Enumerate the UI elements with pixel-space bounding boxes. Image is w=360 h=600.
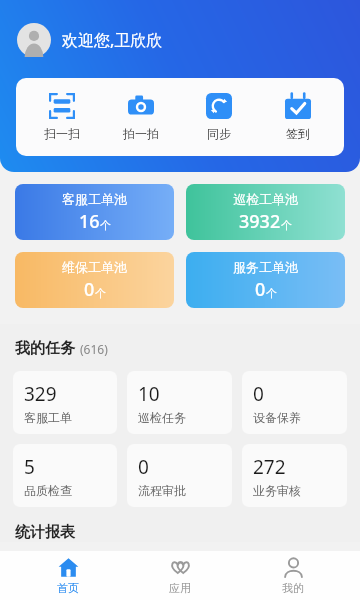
button[interactable]: 服务工单池 [186, 252, 345, 308]
button[interactable]: 签到 [266, 89, 330, 145]
staticText: 3932 [239, 209, 281, 234]
button[interactable]: 拍一拍 [109, 89, 173, 145]
button[interactable]: 巡检工单池 [186, 184, 345, 240]
staticText: 329 [24, 381, 57, 407]
staticText: 巡检工单池 [233, 191, 298, 207]
staticText: 流程审批 [138, 483, 186, 498]
staticText: 欢迎您,卫欣欣 [62, 29, 163, 51]
staticText: 同步 [207, 126, 231, 141]
button[interactable]: 我的 [248, 551, 338, 600]
button[interactable]: 首页 [23, 551, 113, 600]
staticText: 签到 [286, 126, 310, 141]
staticText: 设备保养 [253, 410, 301, 425]
staticText: 个 [100, 218, 111, 232]
button[interactable]: 同步 [187, 89, 251, 145]
button[interactable]: 272 [242, 444, 347, 507]
staticText: 客服工单池 [62, 191, 127, 207]
button[interactable]: 客服工单池 [15, 184, 174, 240]
staticText: 扫一扫 [44, 126, 80, 141]
staticText: 应用 [169, 581, 191, 595]
staticText: 品质检查 [24, 483, 72, 498]
staticText: 16 [79, 209, 100, 234]
button[interactable]: 5 [13, 444, 117, 507]
button[interactable]: 0 [242, 371, 347, 434]
button[interactable]: 10 [127, 371, 232, 434]
button[interactable]: 维保工单池 [15, 252, 174, 308]
staticText: 我的 [282, 581, 304, 595]
staticText: 维保工单池 [62, 259, 127, 275]
staticText: 拍一拍 [123, 126, 159, 141]
staticText: 统计报表 [15, 523, 75, 542]
staticText: 个 [95, 286, 106, 300]
staticText: 业务审核 [253, 483, 301, 498]
staticText: 巡检任务 [138, 410, 186, 425]
staticText: 首页 [57, 581, 79, 595]
staticText: 0 [84, 277, 95, 302]
staticText: 个 [281, 218, 292, 232]
staticText: 个 [266, 286, 277, 300]
staticText: 我的任务 [15, 339, 75, 358]
staticText: 0 [253, 381, 264, 407]
staticText: 服务工单池 [233, 259, 298, 275]
staticText: 10 [138, 381, 160, 407]
button[interactable]: 欢迎您,卫欣欣 [17, 23, 163, 57]
staticText: 5 [24, 454, 35, 480]
staticText: (616) [80, 341, 108, 357]
button[interactable]: 329 [13, 371, 117, 434]
button[interactable]: 应用 [135, 551, 225, 600]
staticText: 客服工单 [24, 410, 72, 425]
staticText: 272 [253, 454, 286, 480]
button[interactable]: 扫一扫 [30, 89, 94, 145]
button[interactable]: 0 [127, 444, 232, 507]
staticText: 0 [138, 454, 149, 480]
staticText: 0 [255, 277, 266, 302]
